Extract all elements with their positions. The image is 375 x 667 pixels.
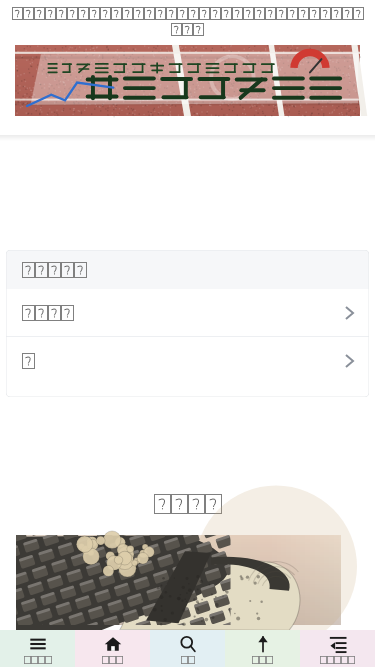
button[interactable] [6, 337, 369, 384]
button[interactable]: Scroll to top [225, 630, 300, 667]
button[interactable]: Menu [0, 630, 75, 667]
button[interactable] [6, 250, 369, 289]
button[interactable]: Site banner [15, 45, 360, 116]
button[interactable]: Home [75, 630, 150, 667]
button[interactable] [6, 289, 369, 336]
button[interactable]: Table of contents [300, 630, 375, 667]
button[interactable]: Article photo [16, 535, 341, 625]
button[interactable]: Search [150, 630, 225, 667]
